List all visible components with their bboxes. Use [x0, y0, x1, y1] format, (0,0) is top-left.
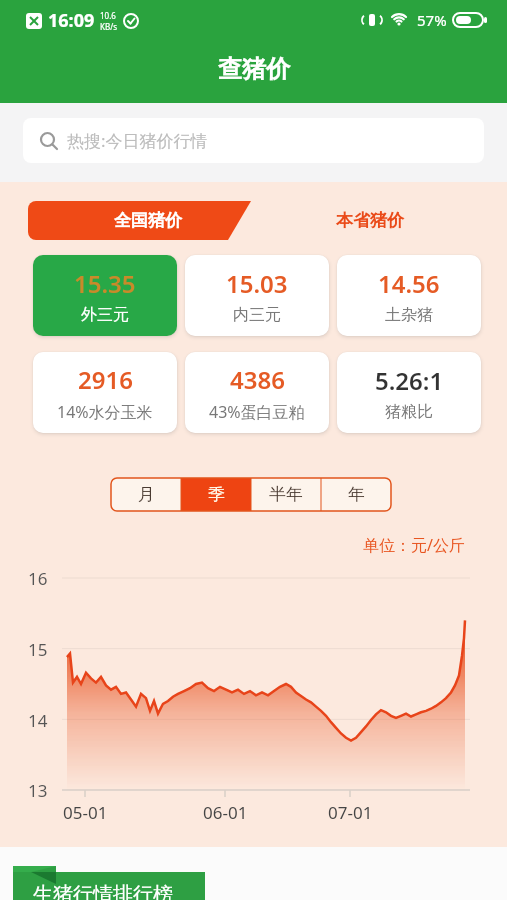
button[interactable]: 4386	[185, 352, 329, 433]
staticText: 半年	[269, 484, 303, 505]
staticText: 15.35	[74, 267, 136, 300]
staticText: 15.03	[226, 267, 288, 300]
staticText: 土杂猪	[385, 305, 433, 325]
button[interactable]: 生猪行情排行榜	[13, 872, 205, 900]
staticText: 外三元	[81, 305, 129, 325]
staticText: 2916	[78, 363, 133, 396]
staticText: 14.56	[378, 267, 440, 300]
staticText: 猪粮比	[385, 402, 433, 422]
staticText: 全国猪价	[114, 210, 182, 231]
button[interactable]: 14.56	[337, 255, 481, 336]
staticText: 季	[208, 484, 225, 505]
staticText: 生猪行情排行榜	[33, 882, 173, 900]
staticText: 查猪价	[218, 54, 290, 84]
staticText: 06-01	[203, 801, 248, 824]
button[interactable]: 月	[111, 478, 181, 511]
staticText: 05-01	[63, 801, 108, 824]
button[interactable]: 半年	[251, 478, 321, 511]
staticText: 5.26:1	[375, 364, 444, 397]
staticText: KB/s	[100, 21, 117, 32]
staticText: 10.6	[100, 10, 116, 21]
staticText: 15	[28, 638, 48, 660]
staticText: 热搜:今日猪价行情	[67, 129, 208, 152]
button[interactable]: 热搜:今日猪价行情	[23, 118, 484, 163]
staticText: 16:09	[48, 8, 95, 33]
staticText: 4386	[230, 363, 285, 396]
button[interactable]: 15.35	[33, 255, 177, 336]
staticText: 月	[138, 484, 155, 505]
staticText: 年	[348, 484, 365, 505]
staticText: 07-01	[328, 801, 373, 824]
button[interactable]: 本省猪价	[310, 201, 430, 240]
staticText: 单位：元/公斤	[363, 534, 465, 556]
staticText: 14%水分玉米	[57, 401, 153, 423]
staticText: 14	[28, 709, 48, 731]
staticText: 16	[28, 567, 48, 589]
button[interactable]: 5.26:1	[337, 352, 481, 433]
button[interactable]: 15.03	[185, 255, 329, 336]
staticText: 43%蛋白豆粕	[209, 401, 305, 423]
staticText: 本省猪价	[336, 210, 404, 231]
staticText: 内三元	[233, 305, 281, 325]
button[interactable]: 全国猪价	[28, 201, 251, 240]
staticText: 13	[28, 779, 48, 801]
button[interactable]: 2916	[33, 352, 177, 433]
button[interactable]: 季	[181, 478, 251, 511]
staticText: 57%	[417, 10, 447, 30]
button[interactable]: 年	[321, 478, 391, 511]
